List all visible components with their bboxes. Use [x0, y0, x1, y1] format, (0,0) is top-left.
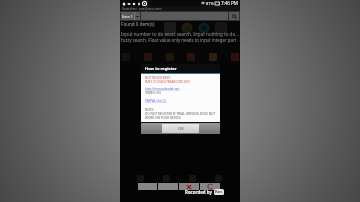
staticText: Searcher xxx@xxx.com: [122, 6, 162, 11]
button[interactable]: OK: [162, 124, 199, 133]
staticText: Recorded by: [185, 189, 214, 195]
staticText: How to register: [145, 66, 177, 72]
staticText: DO NOT REGISTER IF TRIAL VERSION DOES NO…: [145, 112, 216, 116]
staticText: OK: [178, 126, 184, 132]
staticText: PAYPAL/支付宝: [145, 99, 167, 103]
staticText: 7:46 PM: [221, 0, 238, 6]
button[interactable]: Stop: [179, 183, 199, 190]
staticText: 81%: [206, 1, 214, 6]
button[interactable]: Item 1: [121, 12, 140, 20]
staticText: IMEI: 0123456789ABCDEF-800: [145, 80, 190, 84]
button[interactable]: Restart: [200, 183, 220, 190]
staticText: (RMB 6.00): [145, 91, 161, 95]
staticText: NOTE :: [145, 108, 155, 112]
staticText: Input number to do exact search. Input n…: [121, 31, 239, 37]
staticText: http://manualxxdev.net: [145, 87, 180, 91]
staticText: Found 0 item(s): [121, 21, 155, 27]
staticText: Rec: [215, 189, 223, 195]
staticText: NOT REGISTERED: [145, 76, 171, 80]
staticText: fuzzy search. Float value only needs to …: [121, 37, 237, 43]
staticText: Item 1: [122, 14, 133, 19]
button[interactable]: Search: [229, 12, 239, 20]
staticText: WORK ON YOUR DEVICE: [145, 116, 181, 120]
